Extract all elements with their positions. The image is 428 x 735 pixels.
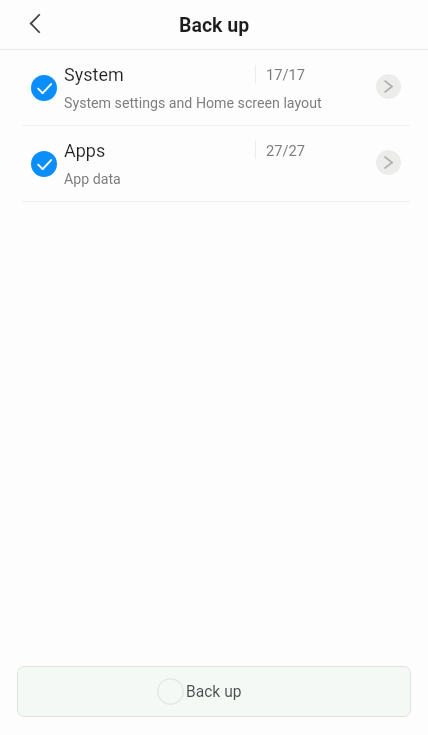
staticText: System	[64, 64, 124, 85]
staticText: App data	[64, 171, 121, 188]
staticText: Apps	[64, 140, 106, 161]
staticText: Back up	[186, 683, 242, 701]
staticText: 27/27	[266, 142, 306, 159]
staticText: System settings and Home screen layout	[64, 95, 322, 112]
button[interactable]: Back up	[17, 666, 411, 717]
button[interactable]: Back	[14, 3, 55, 44]
button[interactable]: Open Apps	[376, 150, 401, 175]
button[interactable]: System	[0, 50, 428, 125]
staticText: Back up	[179, 14, 250, 37]
button[interactable]: Apps	[0, 126, 428, 201]
button[interactable]: Open System	[376, 74, 401, 99]
staticText: 17/17	[266, 66, 306, 83]
